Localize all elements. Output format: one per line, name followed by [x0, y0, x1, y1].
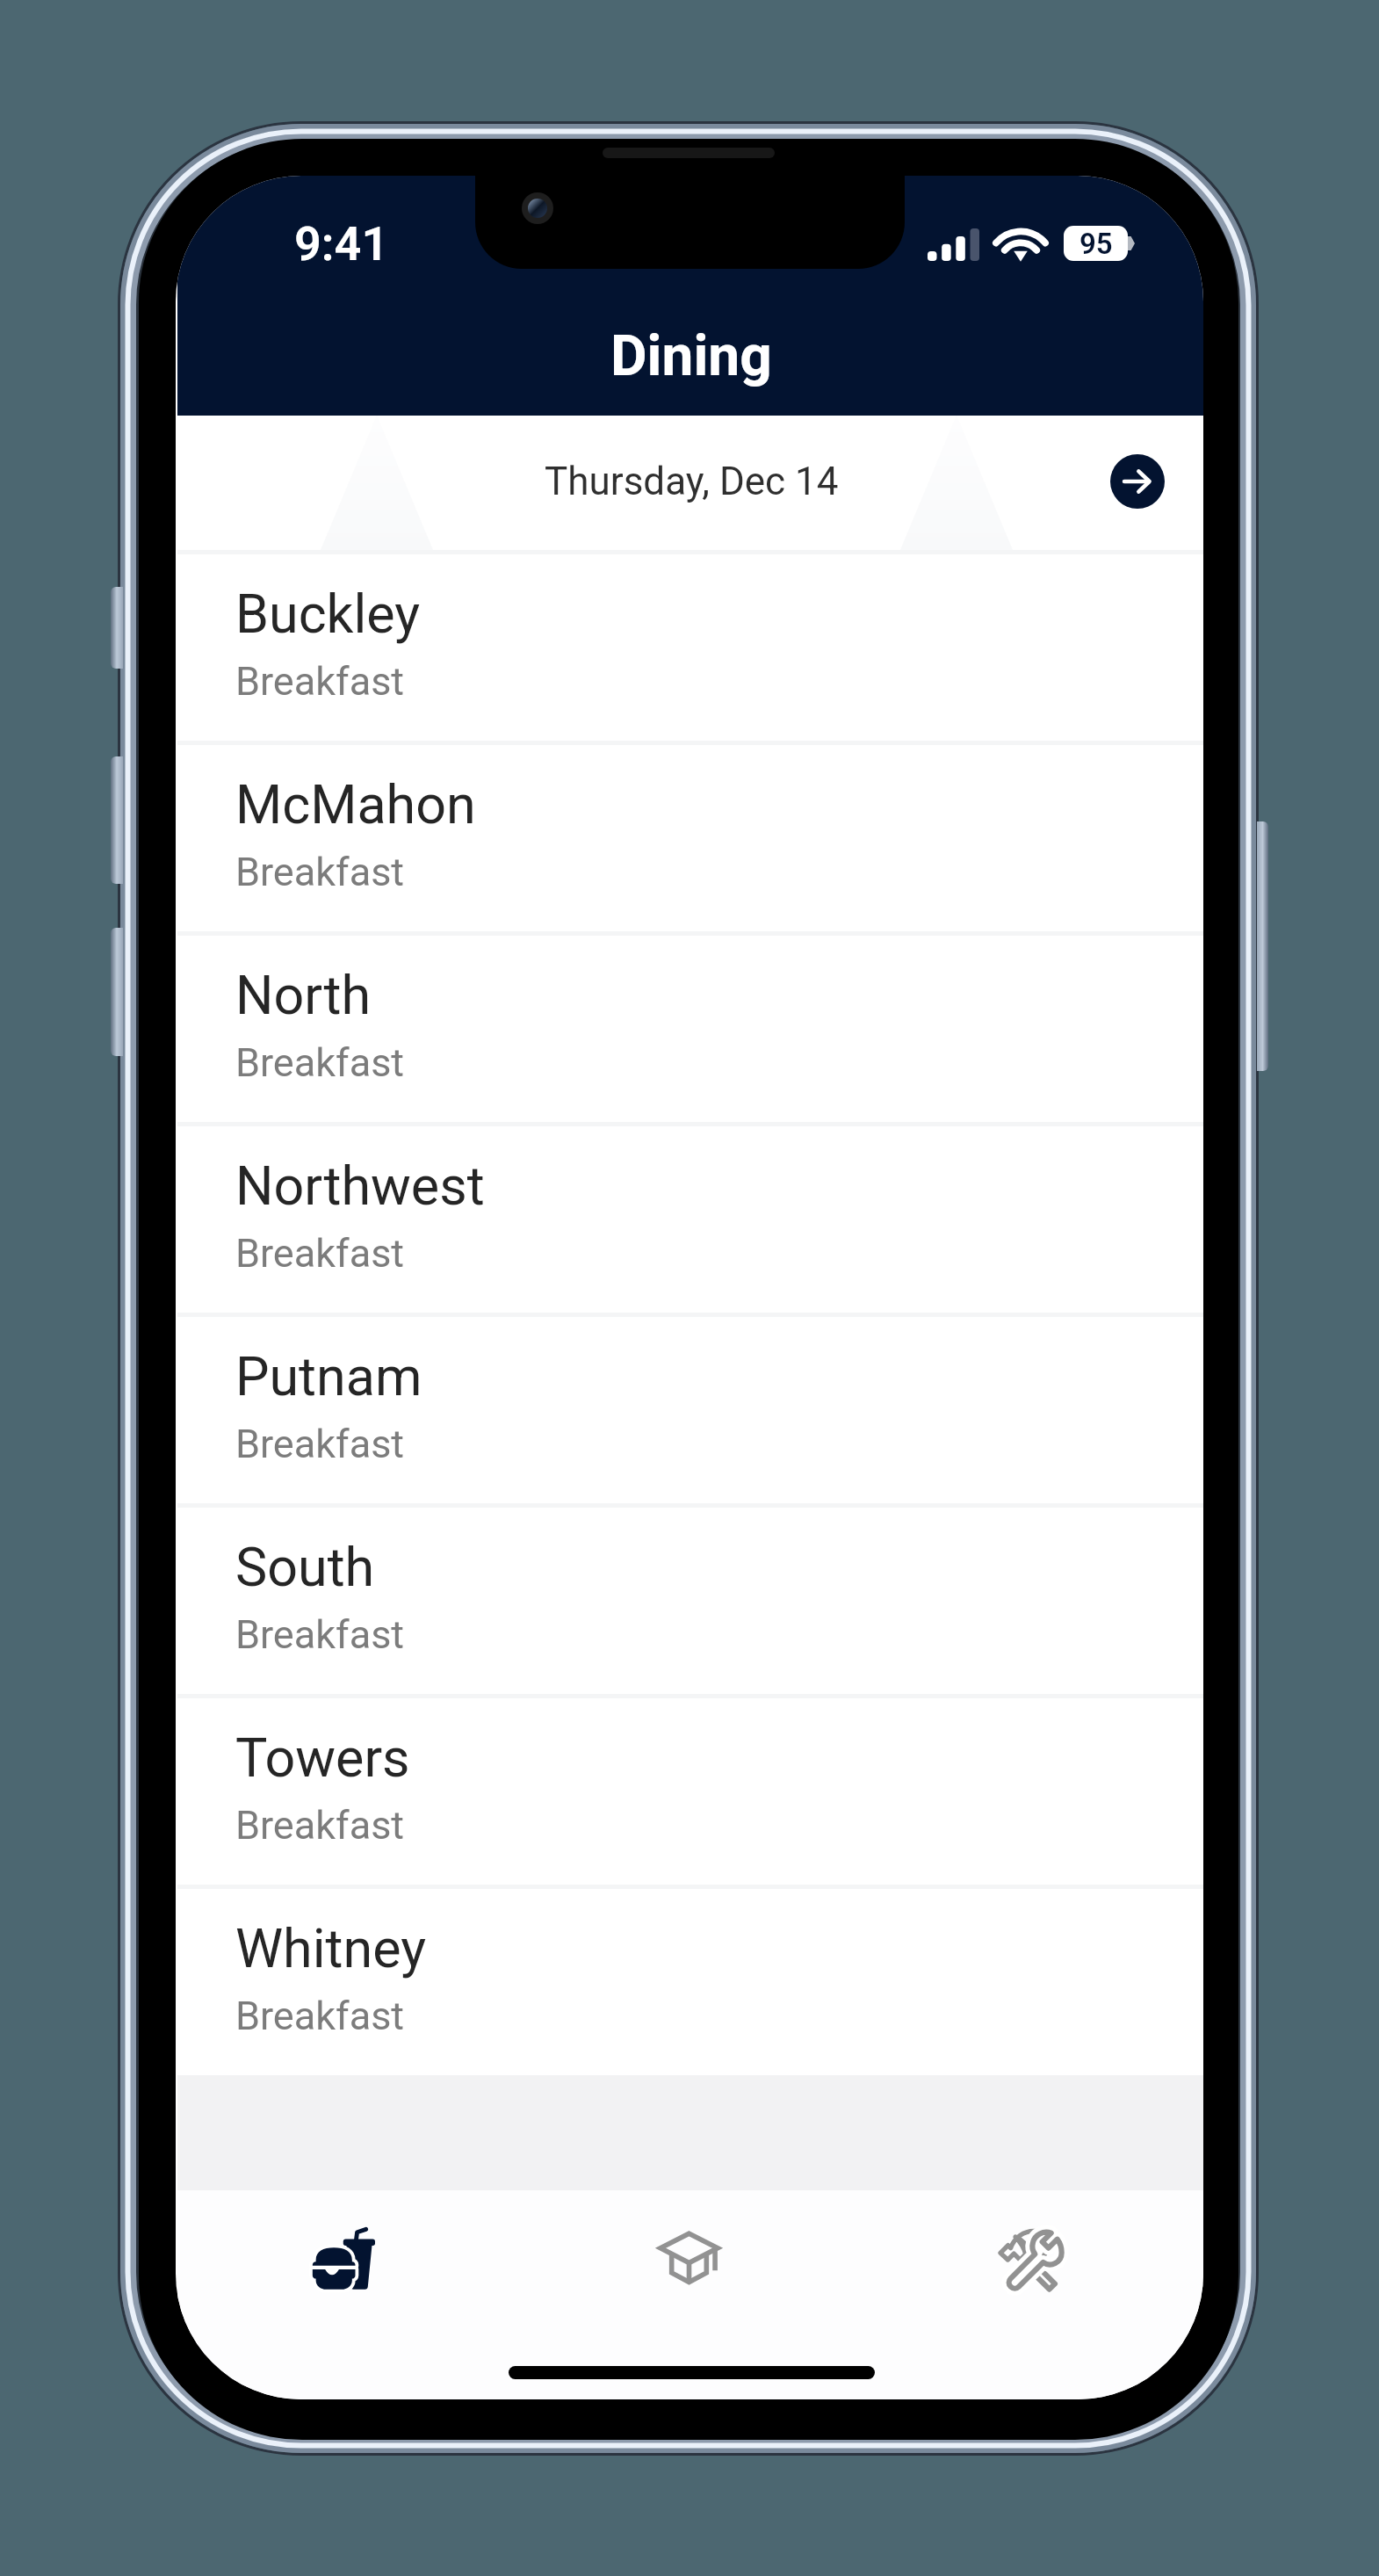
button[interactable]: Buckley [177, 550, 1203, 741]
staticText: McMahon [235, 773, 476, 836]
staticText: Breakfast [235, 1230, 405, 1277]
staticText: Thursday, Dec 14 [545, 459, 839, 504]
staticText: Whitney [235, 1917, 427, 1979]
staticText: Northwest [235, 1154, 485, 1217]
button[interactable]: Next day [1110, 454, 1165, 509]
staticText: 95 [1079, 227, 1113, 261]
button[interactable]: Dining [177, 2190, 520, 2335]
button[interactable]: North [177, 931, 1203, 1122]
staticText: South [235, 1536, 375, 1598]
staticText: Breakfast [235, 1611, 405, 1658]
button[interactable]: McMahon [177, 741, 1203, 931]
staticText: Breakfast [235, 658, 405, 705]
button[interactable]: Putnam [177, 1313, 1203, 1503]
staticText: Breakfast [235, 1421, 405, 1467]
staticText: Buckley [235, 582, 421, 645]
button[interactable]: Northwest [177, 1122, 1203, 1313]
button[interactable]: Academics [520, 2190, 863, 2335]
button[interactable]: Towers [177, 1694, 1203, 1885]
staticText: North [235, 964, 372, 1026]
button[interactable]: Whitney [177, 1885, 1203, 2075]
staticText: Putnam [235, 1345, 422, 1407]
staticText: Breakfast [235, 1993, 405, 2039]
button[interactable]: South [177, 1503, 1203, 1694]
staticText: 9:41 [294, 216, 389, 271]
staticText: Breakfast [235, 1802, 405, 1849]
staticText: Towers [235, 1726, 410, 1789]
staticText: Dining [610, 323, 772, 389]
staticText: Breakfast [235, 1039, 405, 1086]
button[interactable]: Services [863, 2190, 1203, 2335]
staticText: Breakfast [235, 849, 405, 895]
